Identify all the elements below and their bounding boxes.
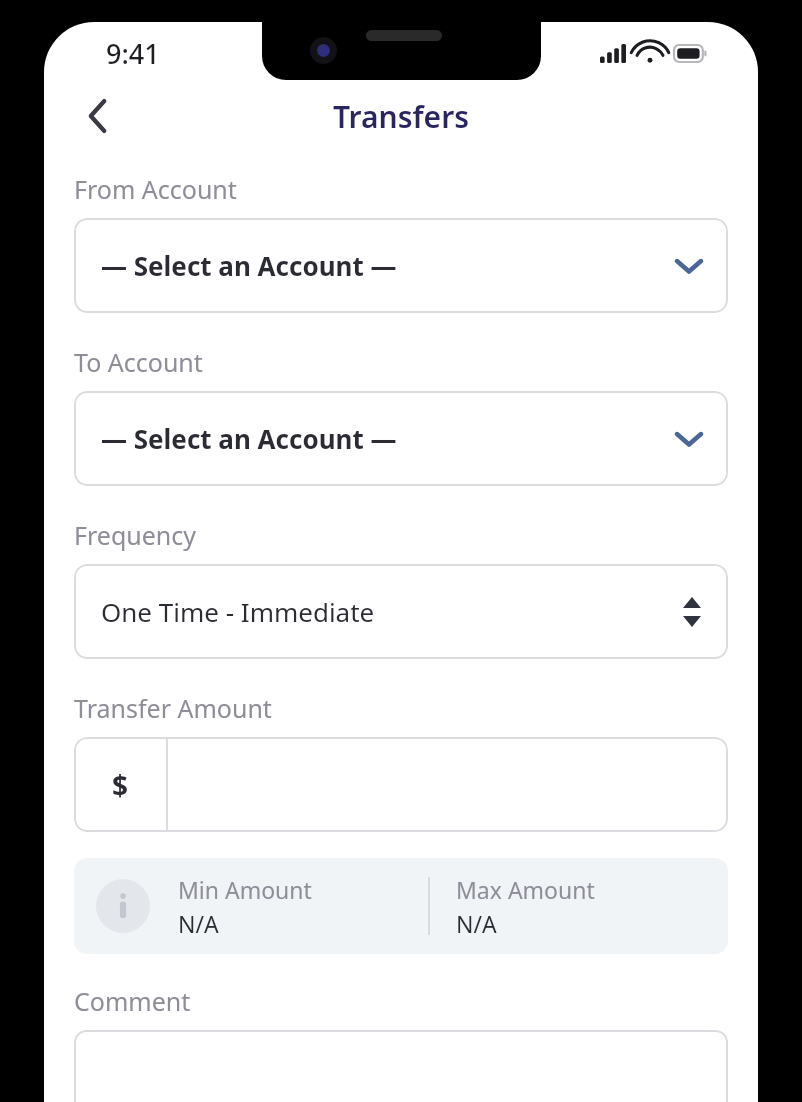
staticText: Transfer Amount — [74, 691, 272, 725]
staticText: Min Amount — [178, 874, 312, 905]
staticText: — Select an Account — — [101, 421, 677, 456]
button[interactable]: — Select an Account — — [74, 391, 728, 486]
staticText: Max Amount — [456, 874, 595, 905]
staticText: 9:41 — [106, 35, 160, 72]
staticText: N/A — [178, 908, 219, 939]
staticText: N/A — [456, 908, 497, 939]
staticText: — Select an Account — — [101, 248, 677, 283]
staticText: $ — [112, 766, 129, 804]
button[interactable]: One Time - Immediate — [74, 564, 728, 659]
button[interactable]: $ — [74, 737, 728, 832]
staticText: Frequency — [74, 518, 197, 552]
button[interactable]: Back — [70, 88, 126, 144]
button[interactable] — [74, 1030, 728, 1102]
staticText: Transfers — [333, 96, 469, 137]
staticText: To Account — [74, 345, 203, 379]
staticText: From Account — [74, 172, 237, 206]
button[interactable]: — Select an Account — — [74, 218, 728, 313]
staticText: One Time - Immediate — [101, 594, 683, 629]
staticText: Comment — [74, 984, 191, 1018]
